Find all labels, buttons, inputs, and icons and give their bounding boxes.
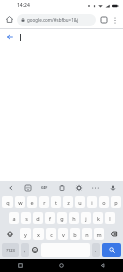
- staticText: q: [6, 199, 10, 206]
- staticText: g: [60, 215, 64, 222]
- staticText: f: [49, 215, 51, 222]
- button[interactable]: m: [94, 228, 104, 240]
- button[interactable]: o: [99, 196, 109, 208]
- staticText: a: [12, 215, 16, 222]
- staticText: u: [78, 199, 82, 206]
- staticText: k: [97, 215, 100, 222]
- button[interactable]: Back: [4, 31, 16, 43]
- staticText: 14:24: [17, 2, 30, 9]
- button[interactable]: More: [89, 181, 102, 194]
- button[interactable]: More options: [110, 15, 120, 25]
- staticText: t: [55, 199, 57, 206]
- staticText: v: [62, 231, 65, 238]
- staticText: y: [24, 231, 27, 238]
- button[interactable]: i: [87, 196, 97, 208]
- staticText: z: [67, 199, 70, 206]
- button[interactable]: p: [111, 196, 121, 208]
- staticText: c: [50, 231, 53, 238]
- button[interactable]: ,: [21, 243, 29, 257]
- button[interactable]: y: [20, 228, 31, 240]
- staticText: o: [102, 199, 106, 206]
- button[interactable]: r: [39, 196, 49, 208]
- staticText: b: [73, 231, 77, 238]
- button[interactable]: f: [45, 212, 55, 224]
- button[interactable]: Backspace: [106, 228, 121, 240]
- button[interactable]: x: [33, 228, 44, 240]
- button[interactable]: Voice input: [106, 181, 119, 194]
- button[interactable]: d: [33, 212, 43, 224]
- staticText: i: [91, 199, 93, 206]
- button[interactable]: u: [75, 196, 85, 208]
- button[interactable]: .: [92, 243, 100, 257]
- button[interactable]: Tabs: [97, 13, 110, 26]
- staticText: .: [95, 247, 97, 254]
- staticText: d: [36, 215, 40, 222]
- staticText: r: [43, 199, 46, 206]
- button[interactable]: l: [105, 212, 115, 224]
- staticText: h: [72, 215, 76, 222]
- button[interactable]: Clipboard: [55, 181, 68, 194]
- staticText: s: [25, 215, 28, 222]
- staticText: GIF: [41, 185, 48, 190]
- staticText: p: [114, 199, 118, 206]
- button[interactable]: g: [57, 212, 67, 224]
- button[interactable]: h: [69, 212, 79, 224]
- button[interactable]: n: [82, 228, 92, 240]
- staticText: n: [85, 231, 89, 238]
- button[interactable]: q: [2, 196, 13, 208]
- staticText: m: [96, 231, 102, 238]
- staticText: ?123: [6, 248, 15, 253]
- button[interactable]: Expand toolbar: [4, 181, 17, 194]
- button[interactable]: Search: [102, 243, 121, 257]
- staticText: w: [18, 199, 23, 206]
- button[interactable]: w: [15, 196, 25, 208]
- button[interactable]: e: [27, 196, 37, 208]
- button[interactable]: t: [51, 196, 61, 208]
- button[interactable]: Shift: [2, 228, 18, 240]
- button[interactable]: Back: [82, 259, 123, 272]
- button[interactable]: Stickers: [21, 181, 34, 194]
- button[interactable]: Home: [3, 13, 16, 26]
- staticText: ,: [24, 247, 26, 254]
- button[interactable]: Home: [41, 259, 82, 272]
- button[interactable]: Recents: [0, 259, 41, 272]
- button[interactable]: s: [21, 212, 31, 224]
- button[interactable]: a: [9, 212, 19, 224]
- staticText: e: [30, 199, 34, 206]
- button[interactable]: Emoji: [31, 243, 39, 257]
- staticText: l: [109, 215, 111, 222]
- button[interactable]: v: [58, 228, 68, 240]
- button[interactable]: google.com/#sbfbu=1&j: [17, 14, 96, 26]
- button[interactable]: b: [70, 228, 80, 240]
- button[interactable]: k: [93, 212, 103, 224]
- staticText: j: [85, 215, 87, 222]
- button[interactable]: GIF: [38, 181, 51, 194]
- button[interactable]: j: [81, 212, 91, 224]
- button[interactable]: Settings: [72, 181, 85, 194]
- button[interactable]: ?123: [2, 243, 19, 257]
- button[interactable]: z: [63, 196, 73, 208]
- staticText: x: [37, 231, 40, 238]
- staticText: google.com/#sbfbu=1&j: [27, 17, 79, 23]
- button[interactable]: c: [46, 228, 56, 240]
